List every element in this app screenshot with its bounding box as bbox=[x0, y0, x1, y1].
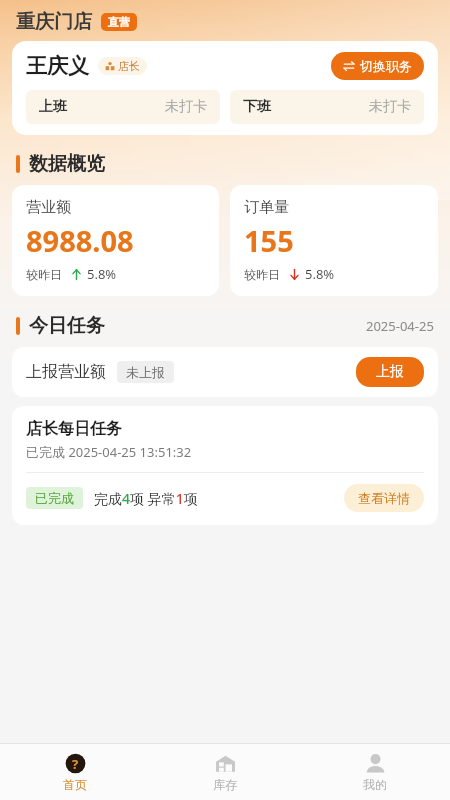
staticText: 数据概览 bbox=[29, 152, 105, 176]
staticText: 上报 bbox=[376, 363, 404, 381]
staticText: 今日任务 bbox=[29, 314, 105, 338]
button[interactable]: 店长每日任务 bbox=[12, 406, 438, 525]
staticText: SAWENHAO bbox=[98, 41, 352, 101]
button[interactable]: 订单量 bbox=[230, 185, 438, 296]
button[interactable]: 首页 bbox=[0, 744, 150, 800]
staticText: 下班 bbox=[243, 98, 271, 116]
staticText: 2025-04-25 bbox=[366, 317, 434, 335]
staticText: 完成4项 异常1项 bbox=[94, 489, 198, 508]
staticText: 5.8% bbox=[87, 265, 117, 283]
staticText: 订单量 bbox=[244, 198, 289, 217]
staticText: 未打卡 bbox=[165, 98, 207, 116]
staticText: 营业额 bbox=[26, 198, 71, 217]
staticText: 已完成 2025-04-25 13:51:32 bbox=[26, 443, 192, 461]
staticText: 切换职务 bbox=[360, 58, 412, 74]
button[interactable]: 下班 bbox=[230, 90, 424, 124]
staticText: 较昨日 bbox=[244, 267, 280, 282]
staticText: 直营 bbox=[108, 15, 130, 29]
button[interactable]: 上班 bbox=[26, 90, 220, 124]
staticText: 5.8% bbox=[305, 265, 335, 283]
staticText: 店长每日任务 bbox=[26, 419, 122, 439]
staticText: 未上报 bbox=[126, 364, 165, 380]
button[interactable]: 查看详情 bbox=[344, 484, 424, 512]
button[interactable]: 切换职务 bbox=[331, 52, 424, 80]
button[interactable]: 店长 bbox=[98, 57, 147, 75]
staticText: 王庆义 bbox=[26, 53, 89, 79]
button[interactable]: 直营 bbox=[101, 13, 137, 31]
staticText: 已完成 bbox=[35, 490, 74, 506]
staticText: ? bbox=[72, 755, 79, 773]
button[interactable]: 营业额 bbox=[12, 185, 219, 296]
button[interactable]: 我的 bbox=[300, 744, 450, 800]
staticText: 查看详情 bbox=[358, 490, 410, 506]
staticText: 我的 bbox=[363, 777, 387, 792]
staticText: 较昨日 bbox=[26, 267, 62, 282]
staticText: 重庆门店 bbox=[16, 10, 92, 34]
button[interactable]: 上报 bbox=[356, 357, 424, 387]
staticText: 155 bbox=[244, 221, 294, 260]
staticText: 店长 bbox=[118, 59, 140, 73]
staticText: 首页 bbox=[63, 777, 87, 792]
button[interactable]: 库存 bbox=[150, 744, 300, 800]
staticText: 8988.08 bbox=[26, 221, 134, 260]
staticText: 库存 bbox=[213, 777, 237, 792]
staticText: 上报营业额 bbox=[26, 362, 106, 382]
staticText: 上班 bbox=[39, 98, 67, 116]
staticText: 未打卡 bbox=[369, 98, 411, 116]
